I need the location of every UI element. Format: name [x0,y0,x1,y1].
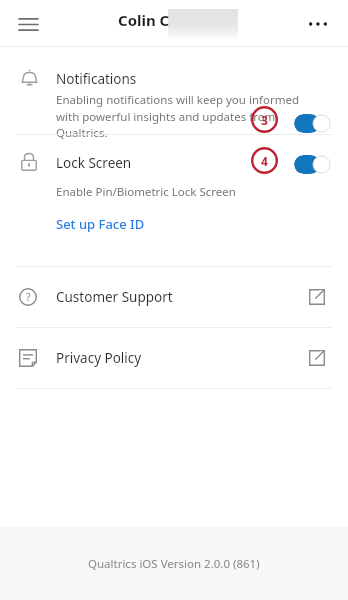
staticText: Privacy Policy [56,349,302,367]
staticText: Enable Pin/Biometric Lock Screen [56,184,236,200]
staticText: Notifications [56,70,137,88]
button[interactable]: Lock Screen [56,154,132,172]
staticText: Qualtrics iOS Version 2.0.0 (861) [88,556,260,572]
staticText: Colin C [118,10,170,30]
button[interactable]: Lock screen toggle, on [294,155,331,174]
button[interactable]: Privacy Policy [0,328,348,388]
button[interactable]: Notifications toggle, on [294,114,331,133]
button[interactable]: More options [302,8,334,40]
button[interactable]: Set up Face ID [56,215,145,233]
staticText: 4 [261,153,268,169]
button[interactable]: Customer Support [0,267,348,327]
staticText: Customer Support [56,288,302,306]
button[interactable]: Open navigation menu [12,8,44,40]
staticText: 3 [261,112,268,128]
staticText: Enabling notifications will keep you inf… [56,92,314,140]
staticText: Set up Face ID [56,215,145,233]
button[interactable]: Notifications [0,47,348,134]
staticText: ? [26,290,31,304]
